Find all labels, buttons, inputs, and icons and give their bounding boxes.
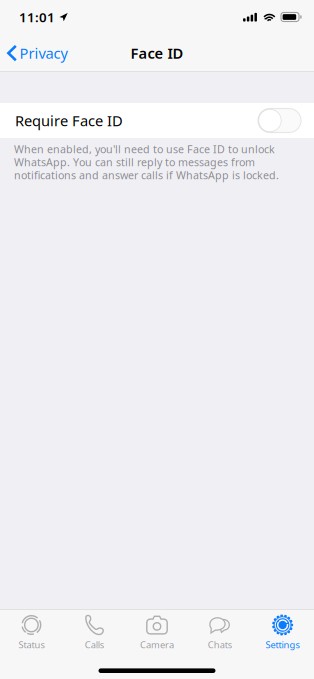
staticText: Camera [140, 638, 174, 651]
button[interactable]: Require Face ID [0, 103, 314, 138]
button[interactable]: Status [0, 609, 63, 655]
staticText: When enabled, you'll need to use Face ID… [14, 142, 279, 182]
staticText: Face ID [130, 43, 183, 63]
button[interactable]: Require Face ID [258, 108, 301, 132]
button[interactable]: Chats [188, 609, 251, 655]
button[interactable]: Privacy [0, 34, 75, 72]
button[interactable]: Settings [251, 609, 314, 655]
staticText: Privacy [19, 43, 67, 63]
staticText: Calls [85, 638, 104, 651]
button[interactable]: Camera [126, 609, 188, 655]
staticText: Settings [266, 638, 300, 651]
staticText: 11:01 [19, 8, 55, 26]
staticText: Chats [208, 638, 232, 651]
staticText: Require Face ID [15, 111, 123, 130]
staticText: Status [18, 638, 44, 651]
button[interactable]: Calls [63, 609, 126, 655]
